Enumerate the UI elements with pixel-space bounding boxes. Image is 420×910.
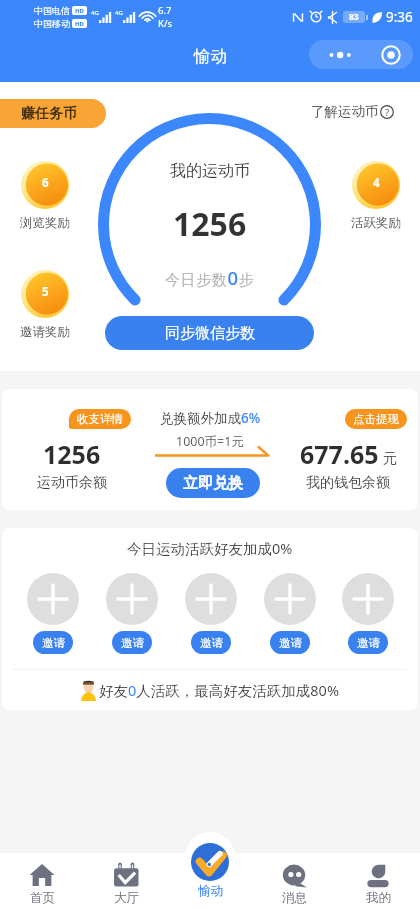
other: Add friend (27, 573, 79, 625)
button[interactable]: 大厅 (84, 853, 168, 910)
staticText: 了解运动币 (311, 103, 379, 120)
staticText: 9:36 (386, 8, 413, 26)
other: Add friend (185, 573, 237, 625)
button[interactable]: 4 (341, 161, 411, 231)
staticText: 收支详情 (77, 412, 123, 426)
staticText: 同步微信步数 (165, 324, 255, 343)
staticText: 邀请 (279, 636, 302, 650)
button[interactable]: More options (309, 40, 413, 69)
staticText: 浏览奖励 (20, 215, 70, 231)
staticText: 邀请 (357, 636, 380, 650)
button[interactable]: Add friend (106, 573, 158, 654)
staticText: K/s (158, 17, 172, 30)
staticText: 赚任务币 (21, 105, 77, 123)
staticText: 元 (383, 450, 397, 468)
staticText: 我的钱包余额 (306, 474, 390, 492)
staticText: 立即兑换 (183, 474, 243, 493)
staticText: 中国电信 (34, 5, 70, 16)
staticText: 邀请 (42, 636, 65, 650)
staticText: 愉动 (198, 883, 223, 899)
staticText: 5 (42, 284, 49, 300)
staticText: 1000币=1元 (176, 433, 244, 450)
staticText: 我的 (366, 890, 391, 906)
staticText: 6.7 (158, 4, 172, 17)
staticText: 大厅 (114, 890, 139, 906)
other: Add friend (342, 573, 394, 625)
button[interactable]: 立即兑换 (166, 468, 260, 498)
staticText: 1256 (43, 437, 101, 471)
staticText: 1256 (173, 202, 247, 246)
staticText: 运动币余额 (37, 474, 107, 492)
staticText: 677.65 (300, 437, 379, 471)
staticText: 点击提现 (353, 412, 399, 426)
button[interactable]: 6 (10, 161, 80, 231)
staticText: 邀请奖励 (20, 324, 70, 340)
staticText: 83 (349, 11, 359, 23)
other: Add friend (106, 573, 158, 625)
staticText: 活跃奖励 (351, 215, 401, 231)
staticText: 邀请 (121, 636, 144, 650)
button[interactable]: 收支详情 (69, 409, 131, 429)
staticText: 好友0人活跃，最高好友活跃加成80% (99, 680, 339, 700)
staticText: 消息 (282, 890, 307, 906)
button[interactable]: Add friend (27, 573, 79, 654)
button[interactable]: 5 (10, 270, 80, 340)
button[interactable]: 我的 (336, 853, 420, 910)
staticText: HD (75, 7, 84, 15)
other: Add friend (264, 573, 316, 625)
button[interactable]: 了解运动币 (311, 103, 394, 120)
button[interactable]: Add friend (185, 573, 237, 654)
staticText: 我的运动币 (170, 161, 250, 181)
staticText: 4G (91, 9, 99, 17)
staticText: 4 (373, 175, 380, 191)
staticText: 6 (42, 175, 49, 191)
staticText: 中国移动 (34, 18, 70, 29)
button[interactable]: Add friend (342, 573, 394, 654)
staticText: 今日运动活跃好友加成0% (127, 538, 293, 558)
button[interactable]: 愉动 (191, 843, 229, 899)
staticText: 首页 (30, 890, 55, 906)
button[interactable]: 同步微信步数 (105, 316, 314, 350)
button[interactable]: 赚任务币 (0, 99, 106, 128)
staticText: 愉动 (194, 46, 227, 67)
button[interactable]: 点击提现 (345, 409, 407, 429)
staticText: HD (75, 20, 84, 28)
staticText: 兑换额外加成6% (160, 409, 261, 427)
staticText: 今日步数0步 (165, 265, 255, 290)
button[interactable]: Add friend (264, 573, 316, 654)
staticText: 4G (115, 9, 123, 17)
staticText: 邀请 (200, 636, 223, 650)
staticText: ? (385, 106, 390, 119)
button[interactable]: 消息 (252, 853, 336, 910)
button[interactable]: 首页 (0, 853, 84, 910)
